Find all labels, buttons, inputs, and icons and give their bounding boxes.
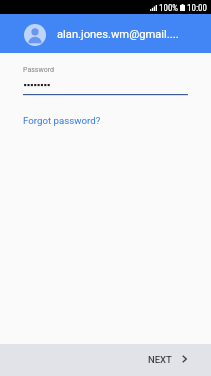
other: Mobile signal <box>150 5 157 11</box>
staticText: Password <box>23 66 54 74</box>
staticText: 10:00 <box>187 3 207 14</box>
staticText: NEXT <box>148 354 172 365</box>
button[interactable]: Forgot password? <box>23 115 101 126</box>
staticText: Forgot password? <box>23 115 101 126</box>
button[interactable]: Password <box>0 66 211 96</box>
button[interactable]: NEXT <box>132 349 211 372</box>
staticText: 100% <box>159 3 179 14</box>
button[interactable]: alan.jones.wm@gmail.... <box>0 14 211 53</box>
staticText: alan.jones.wm@gmail.... <box>57 28 179 41</box>
other: Battery <box>180 4 185 11</box>
